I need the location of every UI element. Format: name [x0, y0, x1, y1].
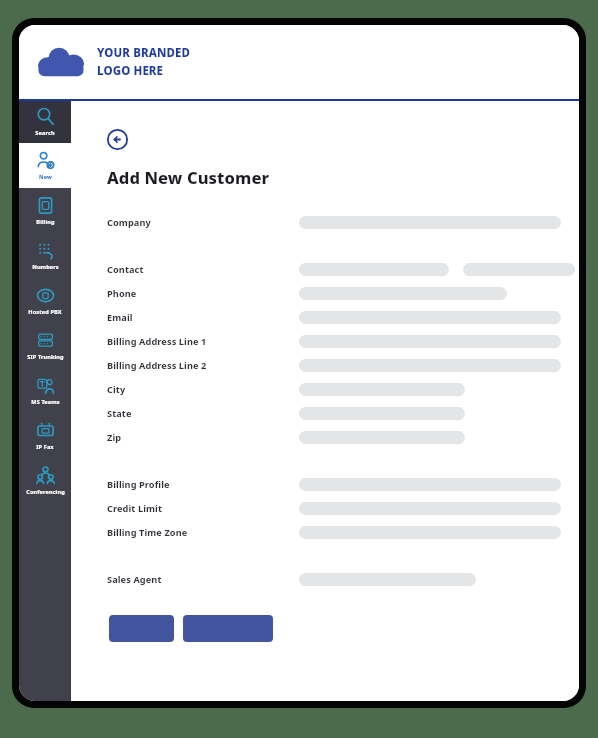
staticText: Contact	[107, 263, 144, 276]
button[interactable]: Back	[107, 129, 128, 150]
staticText: Numbers	[32, 263, 59, 271]
staticText: City	[107, 383, 126, 396]
button[interactable]: Hosted PBX	[19, 278, 71, 323]
button[interactable]	[299, 287, 507, 300]
button[interactable]	[463, 263, 575, 276]
button[interactable]	[299, 263, 449, 276]
staticText: State	[107, 407, 132, 420]
staticText: LOGO HERE	[97, 63, 164, 79]
staticText: Add New Customer	[107, 166, 270, 188]
staticText: Email	[107, 311, 133, 324]
staticText: YOUR BRANDED	[97, 45, 191, 61]
staticText: Sales Agent	[107, 573, 162, 586]
staticText: Billing	[36, 218, 55, 226]
staticText: Billing Time Zone	[107, 526, 188, 539]
staticText: MS Teams	[31, 398, 60, 406]
button[interactable]: Search	[19, 101, 71, 143]
staticText: Phone	[107, 287, 137, 300]
button[interactable]	[299, 383, 465, 396]
button[interactable]: Billing	[19, 188, 71, 233]
button[interactable]	[299, 431, 465, 444]
staticText: IP Fax	[36, 443, 54, 451]
button[interactable]	[299, 407, 465, 420]
staticText: Billing Profile	[107, 478, 170, 491]
button[interactable]: New	[19, 143, 71, 188]
staticText: Search	[35, 129, 55, 137]
staticText: Conferencing	[26, 488, 65, 496]
button[interactable]: Save	[109, 615, 174, 642]
staticText: Company	[107, 216, 151, 229]
button[interactable]: Save and add another	[183, 615, 273, 642]
staticText: New	[39, 173, 52, 181]
staticText: Billing Address Line 2	[107, 359, 207, 372]
button[interactable]: SIP Trunking	[19, 323, 71, 368]
button[interactable]	[299, 573, 476, 586]
button[interactable]: IP Fax	[19, 413, 71, 458]
staticText: Hosted PBX	[28, 308, 62, 316]
staticText: Zip	[107, 431, 122, 444]
button[interactable]: Numbers	[19, 233, 71, 278]
button[interactable]: MS Teams	[19, 368, 71, 413]
button[interactable]: Conferencing	[19, 458, 71, 503]
staticText: Credit Limit	[107, 502, 163, 515]
staticText: SIP Trunking	[27, 353, 64, 361]
staticText: Billing Address Line 1	[107, 335, 207, 348]
